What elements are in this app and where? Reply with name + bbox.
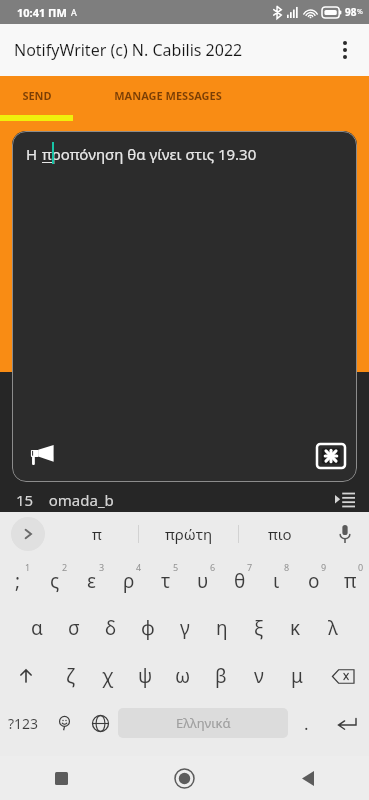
staticText: ς <box>50 568 60 594</box>
button[interactable]: Backspace <box>316 652 369 700</box>
staticText: κ <box>290 615 301 641</box>
staticText: 7 <box>247 561 253 573</box>
button[interactable]: ρ <box>110 556 147 604</box>
button[interactable]: SEND <box>0 76 73 115</box>
button[interactable]: ζ <box>52 652 89 700</box>
staticText: 4 <box>136 561 142 573</box>
button[interactable]: δ <box>92 604 129 652</box>
staticText: 15 omada_b <box>16 490 114 510</box>
staticText: MANAGE MESSAGES <box>114 88 222 103</box>
button[interactable]: πιο <box>239 512 321 556</box>
button[interactable]: Change language <box>82 700 118 746</box>
staticText: NotifyWriter (c) N. Cabilis 2022 <box>14 39 243 61</box>
button[interactable]: Clear text <box>317 444 345 468</box>
staticText: Η <box>26 144 42 164</box>
staticText: 6 <box>210 561 216 573</box>
staticText: τ <box>161 568 171 594</box>
button[interactable]: πρώτη <box>139 512 238 556</box>
button[interactable]: γ <box>166 604 203 652</box>
button[interactable]: More suggestions <box>0 512 56 556</box>
staticText: α <box>31 615 43 641</box>
staticText: 2 <box>62 561 68 573</box>
staticText: ; <box>15 568 21 594</box>
button[interactable]: σ <box>55 604 92 652</box>
staticText: ζ <box>66 663 75 689</box>
button[interactable]: Shift <box>0 652 52 700</box>
staticText: A <box>71 6 77 18</box>
button[interactable]: MANAGE MESSAGES <box>73 76 263 115</box>
button[interactable]: Back <box>246 756 369 800</box>
button[interactable]: ω <box>164 652 202 700</box>
staticText: θ <box>234 568 246 594</box>
staticText: φ <box>141 615 155 641</box>
staticText: ι <box>273 568 280 594</box>
button[interactable]: ν <box>240 652 278 700</box>
button[interactable]: π <box>56 512 138 556</box>
button[interactable]: ψ <box>126 652 164 700</box>
button[interactable]: ; <box>0 556 36 604</box>
button[interactable]: β <box>202 652 240 700</box>
button[interactable]: Home <box>123 756 246 800</box>
staticText: 9 <box>321 561 327 573</box>
staticText: πρώτη <box>165 524 213 544</box>
staticText: προπόνηση θα γίνει στις 19.30 <box>42 144 257 164</box>
staticText: Ελληνικά <box>176 714 231 732</box>
button[interactable]: More options <box>321 26 369 74</box>
staticText: σ <box>68 615 80 641</box>
button[interactable]: η <box>203 604 240 652</box>
staticText: ο <box>308 568 320 594</box>
button[interactable]: Emoji <box>46 700 82 746</box>
staticText: ε <box>87 568 96 594</box>
staticText: % <box>357 7 363 17</box>
button[interactable]: ξ <box>240 604 277 652</box>
staticText: SEND <box>22 88 52 103</box>
staticText: 0 <box>358 561 364 573</box>
staticText: ξ <box>254 615 264 641</box>
staticText: π <box>92 524 102 544</box>
button[interactable]: Ελληνικά <box>118 708 288 738</box>
staticText: λ <box>328 615 338 641</box>
button[interactable]: Enter <box>324 700 369 746</box>
staticText: η <box>216 615 228 641</box>
button[interactable]: Send notification <box>23 436 59 472</box>
staticText: 98 <box>345 5 357 19</box>
staticText: ν <box>254 663 264 689</box>
button[interactable]: Voice input <box>321 512 369 556</box>
staticText: μ <box>291 663 303 689</box>
button[interactable]: ε <box>73 556 110 604</box>
staticText: χ <box>102 663 114 689</box>
staticText: πιο <box>268 524 292 544</box>
button[interactable]: τ <box>147 556 184 604</box>
button[interactable]: μ <box>278 652 316 700</box>
button[interactable]: ?123 <box>0 700 46 746</box>
button[interactable]: ο <box>295 556 332 604</box>
button[interactable]: ς <box>36 556 73 604</box>
button[interactable]: Η <box>12 131 357 482</box>
button[interactable]: α <box>18 604 55 652</box>
button[interactable]: φ <box>129 604 166 652</box>
staticText: . <box>304 712 309 735</box>
staticText: 5 <box>173 561 179 573</box>
button[interactable]: . <box>288 700 324 746</box>
staticText: γ <box>180 615 190 641</box>
button[interactable]: θ <box>221 556 258 604</box>
staticText: 8 <box>284 561 290 573</box>
staticText: ?123 <box>8 714 39 733</box>
button[interactable]: ι <box>258 556 295 604</box>
staticText: 1 <box>25 561 31 573</box>
button[interactable]: λ <box>314 604 351 652</box>
staticText: δ <box>105 615 117 641</box>
button[interactable]: Reorder list <box>333 488 357 512</box>
staticText: ρ <box>123 568 135 594</box>
staticText: ω <box>175 663 191 689</box>
button[interactable]: υ <box>184 556 221 604</box>
staticText: 3 <box>99 561 105 573</box>
button[interactable]: χ <box>89 652 126 700</box>
button[interactable]: κ <box>277 604 314 652</box>
staticText: π <box>344 568 357 594</box>
staticText: ψ <box>138 663 153 689</box>
staticText: β <box>215 663 227 689</box>
button[interactable]: Recent apps <box>0 756 123 800</box>
button[interactable]: π <box>332 556 369 604</box>
